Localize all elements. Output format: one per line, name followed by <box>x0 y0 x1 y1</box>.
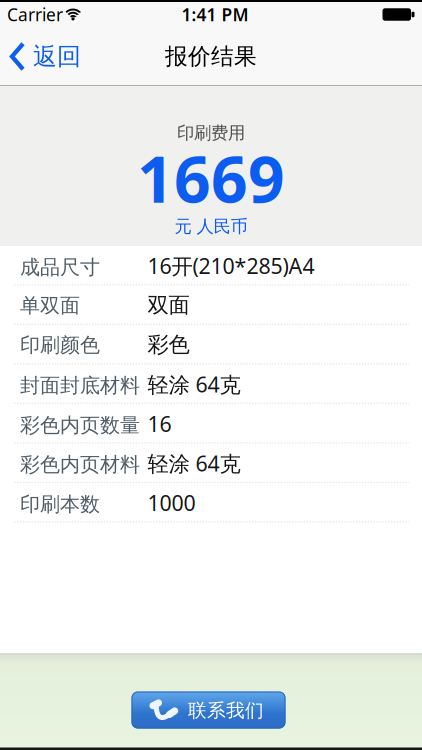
staticText: 1669 <box>137 135 285 220</box>
staticText: 16 <box>147 410 171 438</box>
staticText: 1:41 PM <box>181 3 248 26</box>
staticText: 1000 <box>147 489 195 517</box>
staticText: 成品尺寸 <box>20 255 100 280</box>
staticText: 返回 <box>33 42 81 71</box>
staticText: 印刷本数 <box>20 492 100 517</box>
staticText: 彩色内页材料 <box>20 452 140 477</box>
staticText: 彩色内页数量 <box>20 413 140 438</box>
staticText: 印刷颜色 <box>20 333 100 357</box>
staticText: 联系我们 <box>188 699 264 722</box>
staticText: 轻涂 64克 <box>147 449 240 477</box>
staticText: 封面封底材料 <box>20 373 140 398</box>
staticText: Carrier <box>7 3 63 26</box>
button[interactable]: 联系我们 <box>134 691 288 728</box>
button[interactable]: 返回 <box>0 42 81 71</box>
staticText: 元 人民币 <box>174 216 247 237</box>
staticText: 双面 <box>147 292 189 318</box>
staticText: 报价结果 <box>165 43 257 70</box>
staticText: 彩色 <box>147 332 189 358</box>
staticText: 16开(210*285)A4 <box>147 252 314 280</box>
staticText: 单双面 <box>20 293 80 318</box>
staticText: 轻涂 64克 <box>147 370 240 398</box>
staticText: 印刷费用 <box>177 122 245 144</box>
